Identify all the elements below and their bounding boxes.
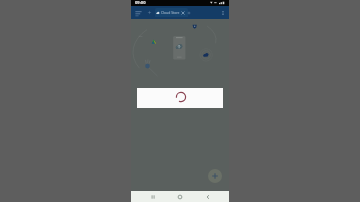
button[interactable]: Menu — [134, 9, 142, 17]
button[interactable] — [137, 88, 223, 108]
button[interactable]: More options — [220, 10, 226, 16]
button[interactable]: Back — [196, 191, 229, 202]
button[interactable]: Recents — [131, 191, 163, 202]
button[interactable]: Home — [163, 191, 196, 202]
button[interactable] — [155, 8, 188, 17]
button[interactable]: Add — [208, 169, 222, 183]
button[interactable]: Cloud Store — [156, 8, 180, 17]
staticText: Cloud Store — [161, 10, 180, 15]
staticText: 09:00 — [135, 0, 146, 6]
